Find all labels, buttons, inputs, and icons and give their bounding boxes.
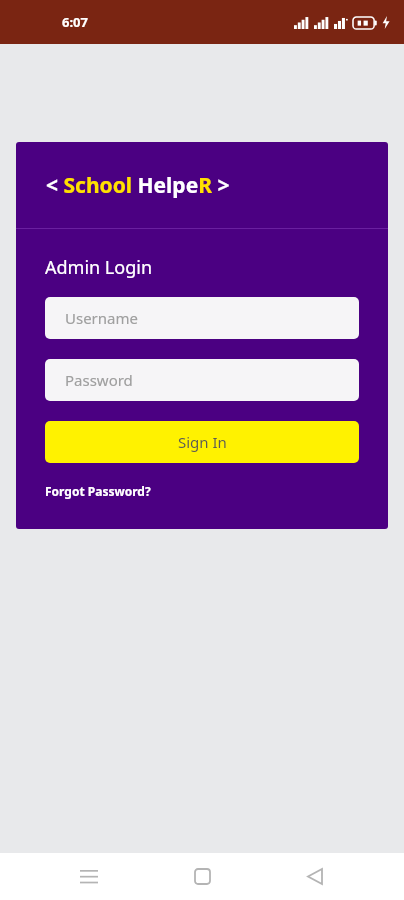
staticText: Username bbox=[65, 308, 138, 328]
button[interactable]: Password bbox=[45, 359, 359, 401]
button[interactable]: Home bbox=[178, 853, 226, 900]
staticText: Sign In bbox=[178, 432, 227, 452]
staticText: 6:07 bbox=[62, 13, 88, 31]
button[interactable]: Sign In bbox=[45, 421, 359, 463]
button[interactable]: Username bbox=[45, 297, 359, 339]
staticText: Admin Login bbox=[45, 255, 153, 280]
staticText: < School HelpeR > bbox=[46, 171, 230, 200]
staticText: Forgot Password? bbox=[45, 483, 151, 499]
button[interactable]: Back bbox=[291, 853, 339, 900]
staticText: Password bbox=[65, 370, 133, 390]
button[interactable]: Forgot Password? bbox=[45, 483, 151, 499]
button[interactable]: Recent apps bbox=[65, 853, 113, 900]
